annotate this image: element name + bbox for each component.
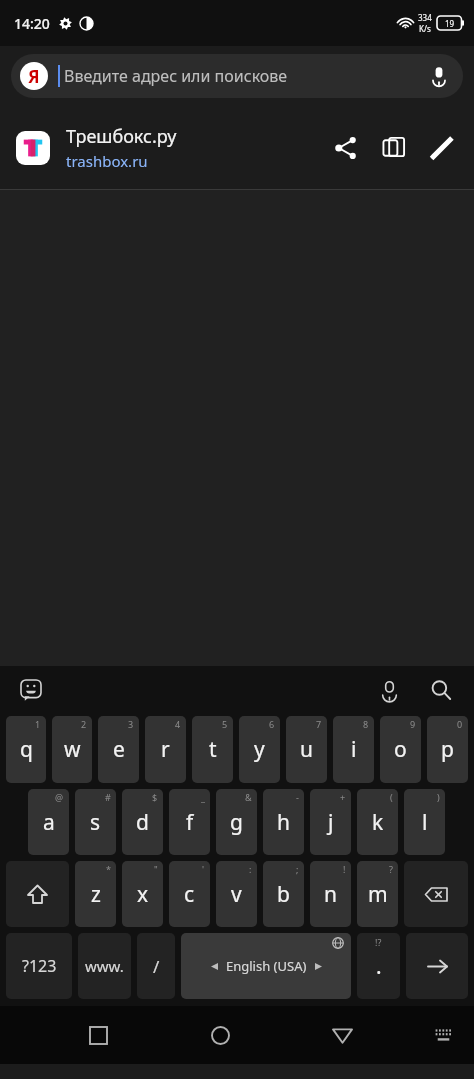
button[interactable]: d (122, 789, 163, 855)
button[interactable]: Voice search (424, 61, 454, 91)
button[interactable]: c (169, 861, 210, 927)
staticText: * (106, 863, 111, 875)
button[interactable]: x (122, 861, 163, 927)
button[interactable]: Voice input (370, 671, 408, 709)
staticText: y (254, 735, 265, 764)
button[interactable]: k (357, 789, 398, 855)
button[interactable]: ?123 (6, 933, 72, 999)
button[interactable]: Shift (6, 861, 69, 927)
button[interactable]: www. (78, 933, 131, 999)
button[interactable]: f (169, 789, 210, 855)
staticText: x (137, 880, 149, 909)
staticText: _ (201, 791, 205, 803)
staticText: trashbox.ru (66, 151, 148, 171)
button[interactable]: e (98, 716, 139, 783)
staticText: / (153, 955, 160, 978)
staticText: : (249, 863, 252, 875)
staticText: English (USA) (226, 957, 307, 975)
button[interactable]: h (263, 789, 304, 855)
button[interactable]: w (52, 716, 92, 783)
staticText: $ (152, 791, 158, 803)
staticText: ; (296, 863, 299, 875)
button[interactable]: Recents (70, 1007, 126, 1063)
button[interactable]: u (286, 716, 327, 783)
staticText: & (245, 791, 252, 803)
staticText: u (300, 735, 313, 764)
staticText: 8 (363, 718, 369, 730)
staticText: 0 (457, 718, 463, 730)
staticText: i (351, 735, 357, 764)
staticText: www. (85, 956, 124, 976)
staticText: v (231, 880, 242, 909)
button[interactable]: Back (314, 1007, 370, 1063)
staticText: K/s (419, 23, 431, 34)
button[interactable]: q (6, 716, 46, 783)
staticText: e (113, 735, 125, 764)
staticText: c (184, 880, 195, 909)
button[interactable]: . (357, 933, 400, 999)
button[interactable]: l (404, 789, 445, 855)
staticText: f (186, 808, 194, 837)
staticText: ? (389, 863, 393, 875)
staticText: Трешбокс.ру (66, 124, 177, 149)
staticText: 4 (175, 718, 181, 730)
button[interactable]: Share (322, 124, 370, 172)
staticText: 1 (35, 718, 41, 730)
staticText: b (277, 880, 290, 909)
staticText: ( (390, 791, 393, 803)
button[interactable]: Я (11, 54, 463, 98)
button[interactable]: o (380, 716, 421, 783)
staticText: 2 (81, 718, 87, 730)
staticText: @ (55, 791, 64, 803)
button[interactable]: n (310, 861, 351, 927)
staticText: # (105, 791, 111, 803)
staticText: m (368, 880, 388, 909)
button[interactable]: r (145, 716, 186, 783)
button[interactable]: Search (422, 671, 460, 709)
staticText: !? (375, 936, 382, 948)
staticText: z (91, 880, 101, 909)
staticText: " (154, 863, 158, 875)
button[interactable]: p (427, 716, 468, 783)
staticText: p (441, 735, 454, 764)
button[interactable]: s (75, 789, 116, 855)
button[interactable]: m (357, 861, 398, 927)
button[interactable]: Emoji (14, 673, 48, 707)
staticText: ) (437, 791, 440, 803)
button[interactable]: Backspace (404, 861, 468, 927)
staticText: k (372, 808, 384, 837)
staticText: l (422, 808, 428, 837)
button[interactable]: Tabs (370, 124, 418, 172)
staticText: . (376, 952, 382, 981)
staticText: g (230, 808, 243, 837)
staticText: s (90, 808, 101, 837)
button[interactable]: v (216, 861, 257, 927)
button[interactable]: / (137, 933, 175, 999)
button[interactable]: y (239, 716, 280, 783)
button[interactable]: Home (192, 1007, 248, 1063)
button[interactable]: j (310, 789, 351, 855)
staticText: n (324, 880, 337, 909)
button[interactable]: Space (181, 933, 351, 999)
button[interactable]: g (216, 789, 257, 855)
button[interactable]: b (263, 861, 304, 927)
button[interactable]: Switch keyboard (420, 1012, 466, 1058)
button[interactable]: Трешбокс.ру (66, 124, 322, 171)
staticText: 3 (128, 718, 134, 730)
staticText: o (394, 735, 407, 764)
staticText: ! (343, 863, 346, 875)
button[interactable]: z (75, 861, 116, 927)
staticText: 9 (410, 718, 416, 730)
button[interactable]: Go (406, 933, 468, 999)
staticText: t (209, 735, 217, 764)
staticText: + (340, 791, 346, 803)
staticText: 6 (269, 718, 275, 730)
staticText: h (277, 808, 290, 837)
button[interactable]: i (333, 716, 374, 783)
button[interactable]: Edit (418, 124, 466, 172)
staticText: 14:20 (14, 14, 50, 33)
button[interactable]: t (192, 716, 233, 783)
button[interactable]: a (28, 789, 69, 855)
staticText: 334 (418, 12, 432, 23)
staticText: w (64, 735, 81, 764)
